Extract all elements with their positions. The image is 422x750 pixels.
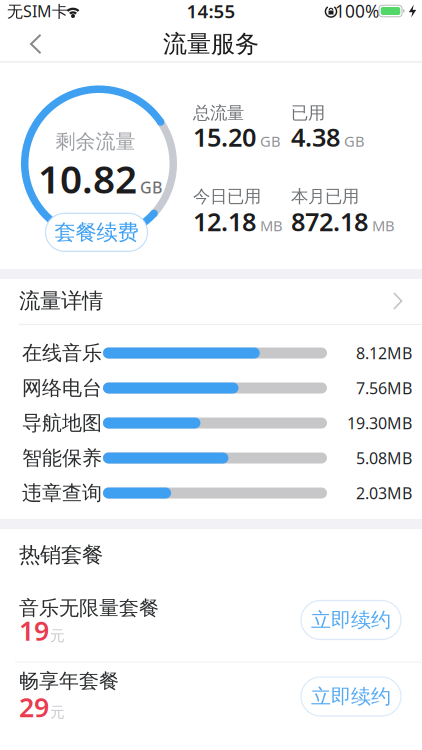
button[interactable]: 立即续约 <box>301 677 401 716</box>
staticText: 10.82 <box>38 153 137 204</box>
staticText: 元 <box>50 703 65 721</box>
staticText: 29 <box>19 689 49 725</box>
staticText: 2.03MB <box>356 482 412 504</box>
button[interactable]: 流量详情 <box>0 284 422 318</box>
staticText: 在线音乐 <box>22 341 102 365</box>
staticText: 导航地图 <box>22 411 102 435</box>
staticText: 畅享年套餐 <box>19 669 119 693</box>
staticText: MB <box>260 216 283 235</box>
staticText: 违章查询 <box>22 481 102 505</box>
staticText: 本月已用 <box>291 186 359 207</box>
button[interactable]: Back <box>13 28 57 60</box>
staticText: 音乐无限量套餐 <box>19 596 159 620</box>
button[interactable]: 套餐续费 <box>45 213 147 251</box>
staticText: GB <box>140 177 162 198</box>
staticText: 12.18 <box>193 205 256 238</box>
staticText: 19 <box>19 613 49 648</box>
staticText: 5.08MB <box>356 447 412 469</box>
staticText: 网络电台 <box>22 376 102 400</box>
staticText: 15.20 <box>193 120 256 154</box>
staticText: 100% <box>335 0 379 22</box>
staticText: GB <box>260 131 281 151</box>
staticText: 总流量 <box>193 102 244 124</box>
button[interactable]: 立即续约 <box>301 600 401 639</box>
staticText: MB <box>372 216 395 235</box>
staticText: 8.12MB <box>356 342 412 364</box>
staticText: 元 <box>50 627 65 645</box>
staticText: 14:55 <box>186 0 235 23</box>
staticText: GB <box>344 131 365 151</box>
staticText: 已用 <box>291 102 325 124</box>
staticText: 智能保养 <box>22 446 102 470</box>
staticText: 今日已用 <box>193 186 261 207</box>
staticText: 立即续约 <box>311 608 391 632</box>
staticText: 立即续约 <box>311 684 391 709</box>
staticText: 872.18 <box>291 205 368 238</box>
staticText: 7.56MB <box>356 377 412 399</box>
staticText: 流量服务 <box>163 29 259 59</box>
staticText: 无SIM卡 <box>7 0 68 22</box>
staticText: 套餐续费 <box>54 219 138 245</box>
staticText: 流量详情 <box>19 288 103 314</box>
staticText: 19.30MB <box>347 412 412 434</box>
staticText: 剩余流量 <box>55 129 135 154</box>
staticText: 4.38 <box>291 120 340 154</box>
staticText: 热销套餐 <box>19 542 103 568</box>
